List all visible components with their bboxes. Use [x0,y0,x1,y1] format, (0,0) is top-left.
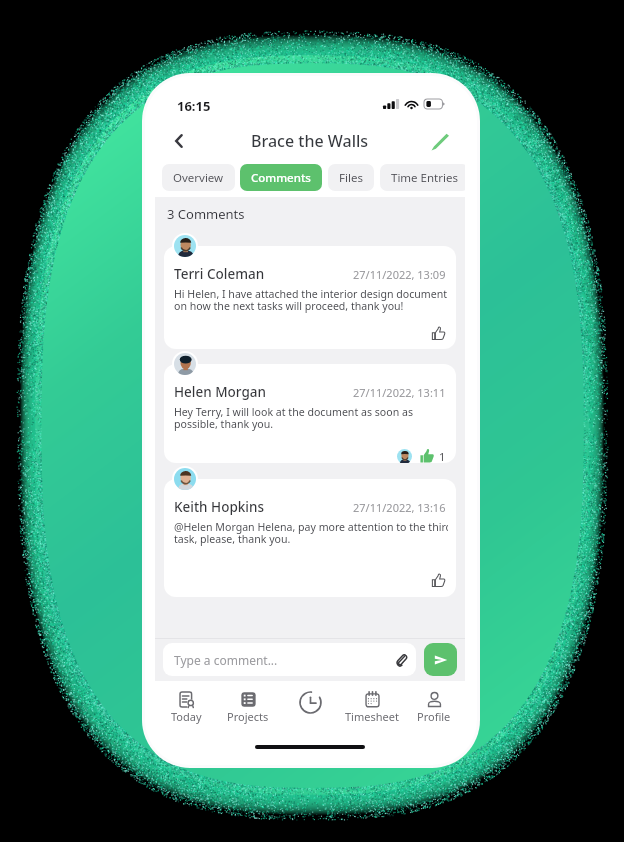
button[interactable]: Today [155,691,217,724]
button[interactable]: Projects [217,691,279,724]
button[interactable]: Like [430,572,446,588]
staticText: Projects [227,709,269,724]
staticText: Hey Terry, I will look at the document a… [174,405,413,432]
staticText: Brace the Walls [251,130,369,152]
staticText: 3 Comments [167,205,245,223]
staticText: Profile [417,709,451,724]
button[interactable]: Overview [162,164,235,191]
staticText: Type a comment... [174,652,278,668]
staticText: Time Entries [391,170,458,186]
button[interactable]: Files [328,164,374,191]
staticText: Overview [173,170,224,186]
button[interactable]: Terri Coleman [164,246,456,349]
button[interactable]: Like [430,325,446,341]
staticText: Hi Helen, I have attached the interior d… [174,287,448,314]
staticText: 16:15 [177,97,211,111]
staticText: 27/11/2022, 13:16 [353,500,446,515]
staticText: Helen Morgan [174,383,266,401]
staticText: Comments [251,170,311,186]
button[interactable]: Keith Hopkins [164,479,456,597]
button[interactable]: Back [165,129,193,153]
staticText: 27/11/2022, 13:09 [353,267,446,282]
button[interactable]: Edit [427,129,453,153]
staticText: @Helen Morgan Helena, pay more attention… [174,520,448,547]
button[interactable]: Timesheet [341,691,403,724]
button[interactable]: Timer [279,691,341,714]
staticText: Keith Hopkins [174,498,265,516]
button[interactable]: Time Entries [380,164,465,191]
staticText: 1 [439,449,446,463]
button[interactable]: Send [424,643,457,676]
button[interactable]: Profile [403,691,465,724]
staticText: Terri Coleman [174,265,265,283]
button[interactable]: Helen Morgan [164,364,456,463]
staticText: Timesheet [345,709,399,724]
staticText: Files [339,170,363,186]
button[interactable]: Comments [240,164,322,191]
button[interactable]: Type a comment... [163,643,416,676]
staticText: Today [171,709,202,724]
button[interactable]: Liked [419,448,435,463]
staticText: 27/11/2022, 13:11 [353,385,446,400]
